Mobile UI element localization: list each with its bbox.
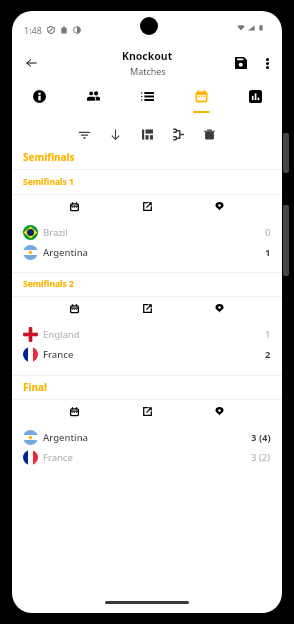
button[interactable]: Open details: [136, 195, 158, 217]
staticText: 2: [265, 348, 271, 361]
staticText: 1: [265, 246, 271, 259]
button[interactable]: Save: [227, 49, 255, 77]
staticText: 0: [265, 226, 271, 239]
button[interactable]: Bracket: [166, 123, 190, 145]
staticText: England: [43, 328, 265, 341]
staticText: Semifinals: [23, 150, 75, 164]
button[interactable]: Delete: [197, 123, 221, 145]
button[interactable]: Date: [63, 297, 85, 319]
staticText: 1: [265, 328, 271, 341]
button[interactable]: Location: [208, 400, 230, 422]
button[interactable]: Date: [63, 400, 85, 422]
button[interactable]: Matches: [174, 82, 228, 114]
button[interactable]: More options: [255, 51, 279, 75]
button[interactable]: France: [12, 447, 282, 468]
staticText: France: [43, 451, 251, 464]
staticText: France: [43, 348, 265, 361]
staticText: Brazil: [43, 226, 265, 239]
staticText: Final: [23, 380, 47, 394]
button[interactable]: Teams: [66, 82, 120, 114]
button[interactable]: Location: [208, 195, 230, 217]
button[interactable]: Date: [63, 195, 85, 217]
staticText: Semifinals 1: [23, 176, 74, 188]
button[interactable]: Brazil: [12, 222, 282, 243]
button[interactable]: Open details: [136, 400, 158, 422]
button[interactable]: Groups: [120, 82, 174, 114]
button[interactable]: England: [12, 324, 282, 345]
staticText: 3 (2): [251, 451, 271, 464]
button[interactable]: Statistics: [228, 82, 282, 114]
staticText: Argentina: [43, 246, 265, 259]
staticText: Argentina: [43, 431, 251, 444]
staticText: 3 (4): [251, 431, 271, 444]
staticText: Knockout: [122, 49, 173, 63]
staticText: 1:48: [24, 24, 42, 36]
button[interactable]: Sort: [103, 123, 127, 145]
button[interactable]: France: [12, 344, 282, 365]
button[interactable]: Info: [12, 82, 66, 114]
button[interactable]: Filter: [72, 123, 96, 145]
button[interactable]: Open details: [136, 297, 158, 319]
button[interactable]: Argentina: [12, 242, 282, 263]
staticText: Matches: [130, 65, 166, 77]
button[interactable]: Grid view: [135, 123, 159, 145]
staticText: Semifinals 2: [23, 278, 74, 290]
button[interactable]: Location: [208, 297, 230, 319]
button[interactable]: Back: [16, 48, 46, 78]
button[interactable]: Argentina: [12, 427, 282, 448]
